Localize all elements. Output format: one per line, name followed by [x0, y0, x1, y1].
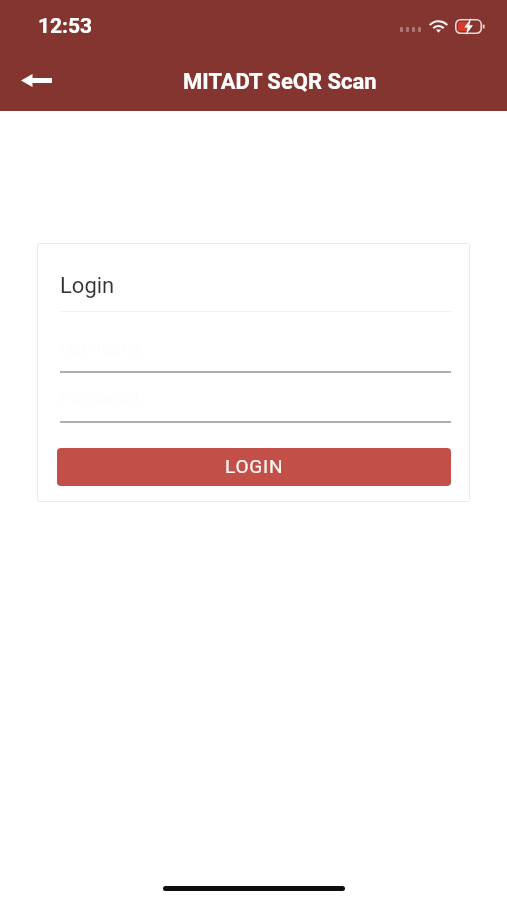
- staticText: MITADT SeQR Scan: [183, 69, 377, 95]
- button[interactable]: Username: [60, 333, 451, 373]
- staticText: 12:53: [38, 14, 93, 39]
- button[interactable]: Back: [8, 52, 64, 108]
- button[interactable]: LOGIN: [57, 448, 451, 486]
- staticText: Login: [60, 273, 115, 299]
- staticText: LOGIN: [225, 455, 284, 477]
- button[interactable]: Password: [60, 383, 451, 423]
